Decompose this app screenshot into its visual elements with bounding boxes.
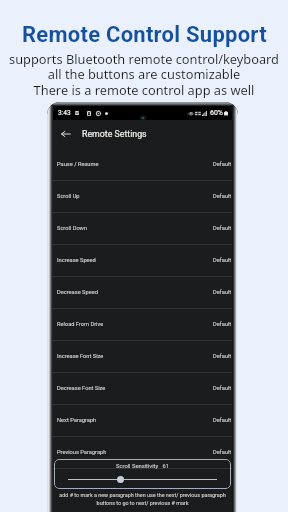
staticText: Default [213, 321, 232, 328]
button[interactable]: Scroll Down [53, 213, 232, 244]
staticText: Pause / Resume [57, 161, 99, 168]
staticText: Default [213, 193, 232, 200]
staticText: Increase Font Size [57, 353, 104, 360]
button[interactable]: Previous Paragraph [53, 437, 232, 468]
staticText: 60% [210, 109, 223, 117]
staticText: Previous Paragraph [57, 449, 107, 456]
button[interactable]: Decrease Speed [53, 277, 232, 308]
staticText: Default [213, 385, 232, 392]
staticText: Decrease Font Size [57, 385, 106, 392]
staticText: Scroll Up [57, 193, 80, 200]
staticText: Remote Settings [82, 129, 147, 139]
button[interactable]: Back [58, 126, 74, 142]
staticText: Next Paragraph [57, 417, 97, 424]
staticText: add # to mark a new paragraph then use t… [57, 492, 228, 506]
staticText: Default [213, 289, 232, 296]
staticText: Default [213, 353, 232, 360]
staticText: Decrease Speed [57, 289, 98, 296]
staticText: Default [213, 449, 232, 456]
staticText: Default [213, 417, 232, 424]
button[interactable]: Scroll Up [53, 181, 232, 212]
staticText: supports Bluetooth remote control/keyboa… [0, 50, 288, 99]
button[interactable]: Scroll sensitivity slider [68, 475, 217, 484]
button[interactable]: Increase Font Size [53, 341, 232, 372]
button[interactable]: Increase Speed [53, 245, 232, 276]
button[interactable]: Decrease Font Size [53, 373, 232, 404]
button[interactable]: Reload From Drive [53, 309, 232, 340]
staticText: Default [213, 225, 232, 232]
button[interactable]: Pause / Resume [53, 149, 232, 180]
button[interactable]: Next Paragraph [53, 405, 232, 436]
staticText: 3:43 [58, 109, 71, 117]
staticText: Increase Speed [57, 257, 96, 264]
staticText: Default [213, 161, 232, 168]
staticText: Scroll Sensitivity 61 [116, 463, 170, 470]
staticText: Default [213, 257, 232, 264]
staticText: Remote Control Support [22, 22, 267, 48]
staticText: Reload From Drive [57, 321, 104, 328]
staticText: Scroll Down [57, 225, 88, 232]
